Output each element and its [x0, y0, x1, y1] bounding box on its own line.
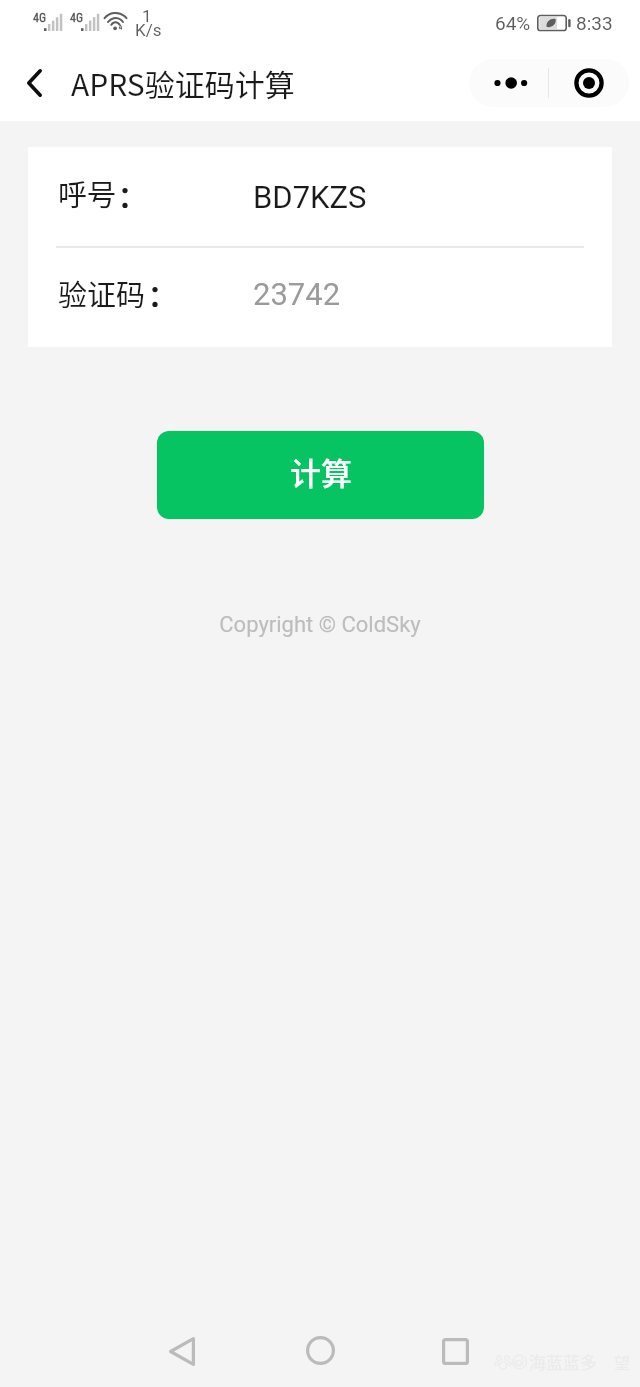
staticText: 4G	[70, 11, 84, 25]
staticText: 8:33	[576, 12, 613, 34]
staticText: 4G	[33, 11, 47, 25]
button[interactable]: More options	[469, 59, 548, 107]
button[interactable]: Recent apps	[425, 1321, 485, 1381]
staticText: 23742	[253, 276, 341, 312]
button[interactable]: Back	[8, 57, 60, 109]
staticText: BD7KZS	[253, 179, 367, 215]
staticText: 1	[142, 6, 152, 26]
button[interactable]: 计算	[157, 431, 484, 519]
button[interactable]: Close mini program	[549, 59, 629, 107]
staticText: 验证码	[58, 272, 146, 314]
staticText: 望	[614, 1350, 631, 1373]
staticText: 呼号	[58, 172, 117, 214]
button[interactable]: 验证码	[28, 248, 612, 347]
button[interactable]: Back	[152, 1321, 212, 1381]
staticText: APRS验证码计算	[71, 61, 295, 104]
staticText: K/s	[135, 20, 162, 40]
staticText: 64%	[495, 12, 531, 34]
button[interactable]: 呼号	[28, 147, 612, 246]
staticText: 计算	[290, 449, 352, 494]
staticText: 海蓝蓝多	[529, 1349, 597, 1374]
button[interactable]: Home	[290, 1320, 350, 1380]
staticText: Copyright © ColdSky	[0, 612, 640, 638]
